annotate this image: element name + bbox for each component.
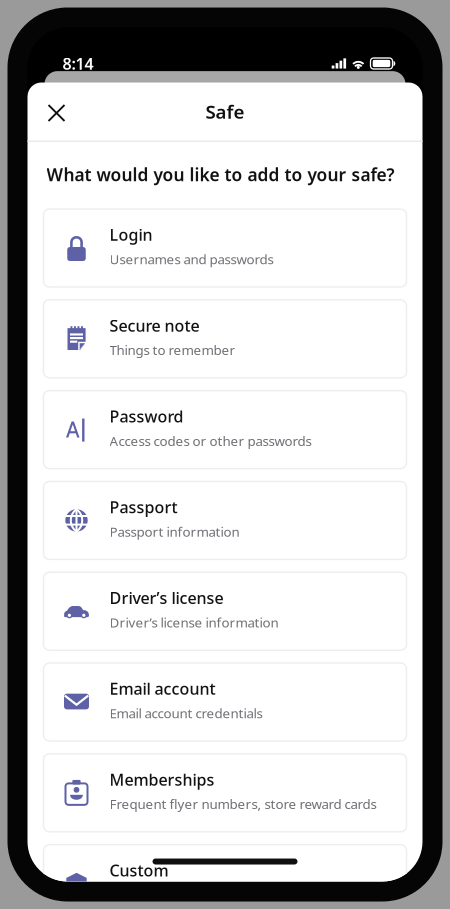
staticText: Password — [109, 406, 183, 427]
staticText: What would you like to add to your safe? — [46, 163, 394, 186]
staticText: Email account — [109, 678, 215, 699]
staticText: 8:14 — [62, 53, 93, 74]
staticText: Custom item — [109, 886, 187, 904]
staticText: Custom — [109, 860, 168, 881]
staticText: Passport information — [109, 523, 239, 540]
button[interactable]: Driver’s license — [43, 572, 406, 650]
staticText: Access codes or other passwords — [109, 432, 311, 450]
button[interactable]: Memberships — [43, 754, 406, 832]
button[interactable]: Custom — [43, 845, 406, 909]
button[interactable]: Login — [43, 209, 406, 287]
button[interactable]: Secure note — [43, 300, 406, 378]
staticText: Things to remember — [109, 341, 235, 359]
button[interactable]: Password — [43, 391, 406, 469]
staticText: Email account credentials — [109, 704, 262, 722]
staticText: Frequent flyer numbers, store reward car… — [109, 795, 376, 813]
staticText: Usernames and passwords — [109, 250, 273, 268]
staticText: Driver’s license — [109, 587, 223, 608]
staticText: Memberships — [109, 769, 214, 790]
button[interactable]: Email account — [43, 663, 406, 741]
staticText: Driver’s license information — [109, 613, 278, 631]
staticText: Secure note — [109, 315, 199, 336]
staticText: Safe — [205, 99, 244, 124]
staticText: Login — [109, 224, 152, 245]
button[interactable]: Close — [34, 88, 78, 135]
button[interactable]: Passport — [43, 481, 406, 559]
staticText: Passport — [109, 496, 177, 518]
